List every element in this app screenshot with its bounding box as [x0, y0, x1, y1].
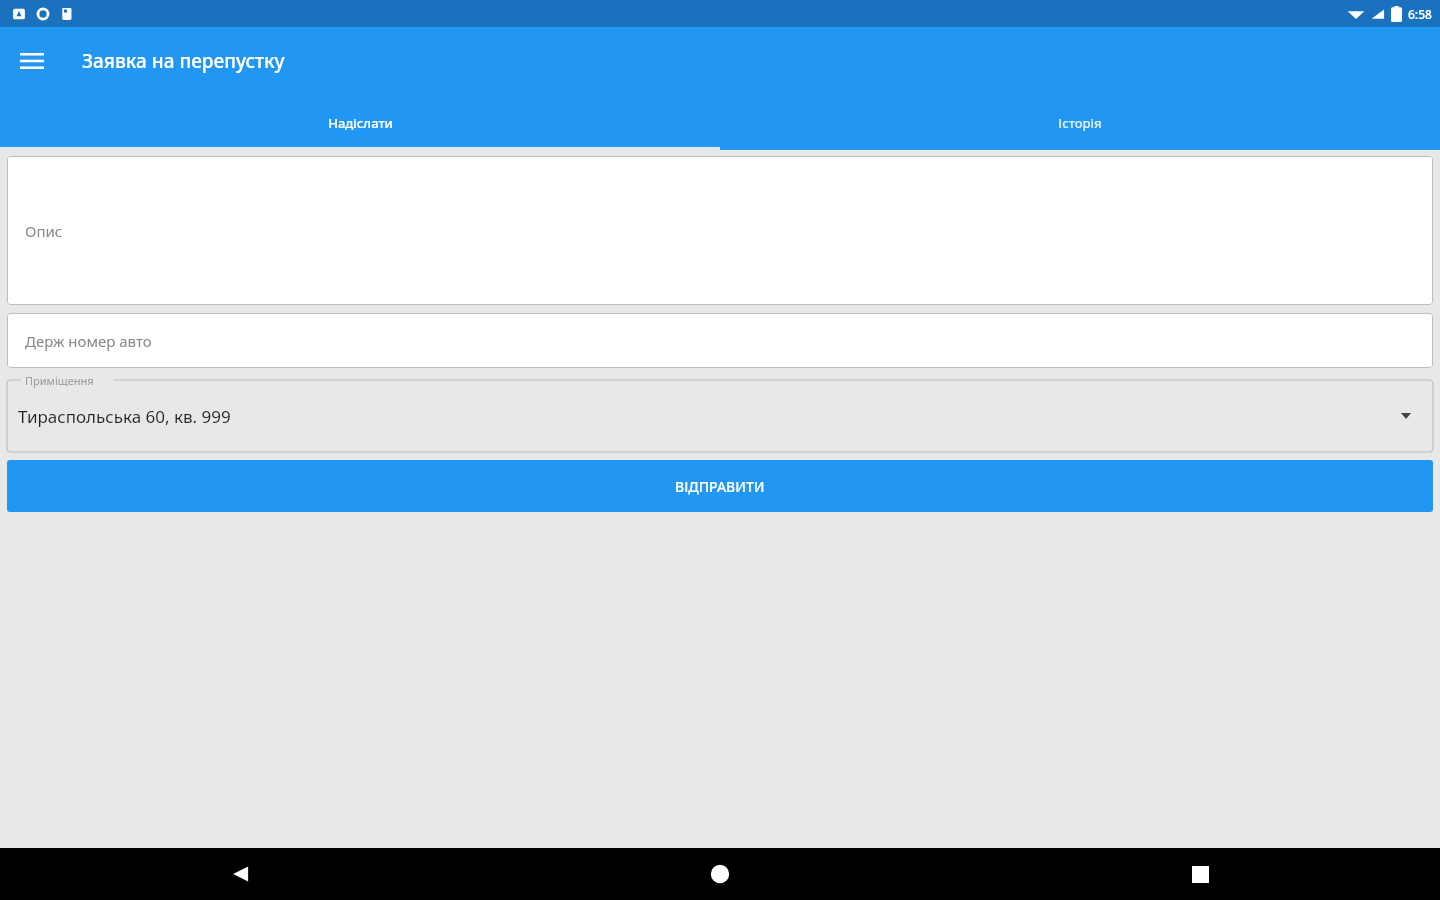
button[interactable]: Держ номер авто	[7, 313, 1433, 368]
staticText: Надіслати	[328, 114, 393, 132]
staticText: Опис	[25, 221, 63, 241]
button[interactable]: Select premises	[7, 380, 1433, 452]
staticText: ВІДПРАВИТИ	[675, 477, 765, 496]
button[interactable]: Історія	[720, 95, 1440, 150]
staticText: Держ номер авто	[25, 331, 152, 351]
staticText: Тираспольська 60, кв. 999	[18, 405, 231, 428]
button[interactable]: Back	[0, 848, 480, 900]
button[interactable]: Надіслати	[0, 95, 720, 150]
staticText: Приміщення	[25, 373, 94, 388]
button[interactable]: Home	[480, 848, 960, 900]
button[interactable]: Recent apps	[960, 848, 1440, 900]
staticText: 6:58	[1408, 6, 1432, 22]
button[interactable]: Опис	[7, 156, 1433, 305]
button[interactable]: ВІДПРАВИТИ	[7, 460, 1433, 512]
staticText: Заявка на перепустку	[82, 48, 285, 74]
button[interactable]: Open navigation menu	[8, 37, 56, 85]
staticText: Історія	[1058, 114, 1102, 132]
